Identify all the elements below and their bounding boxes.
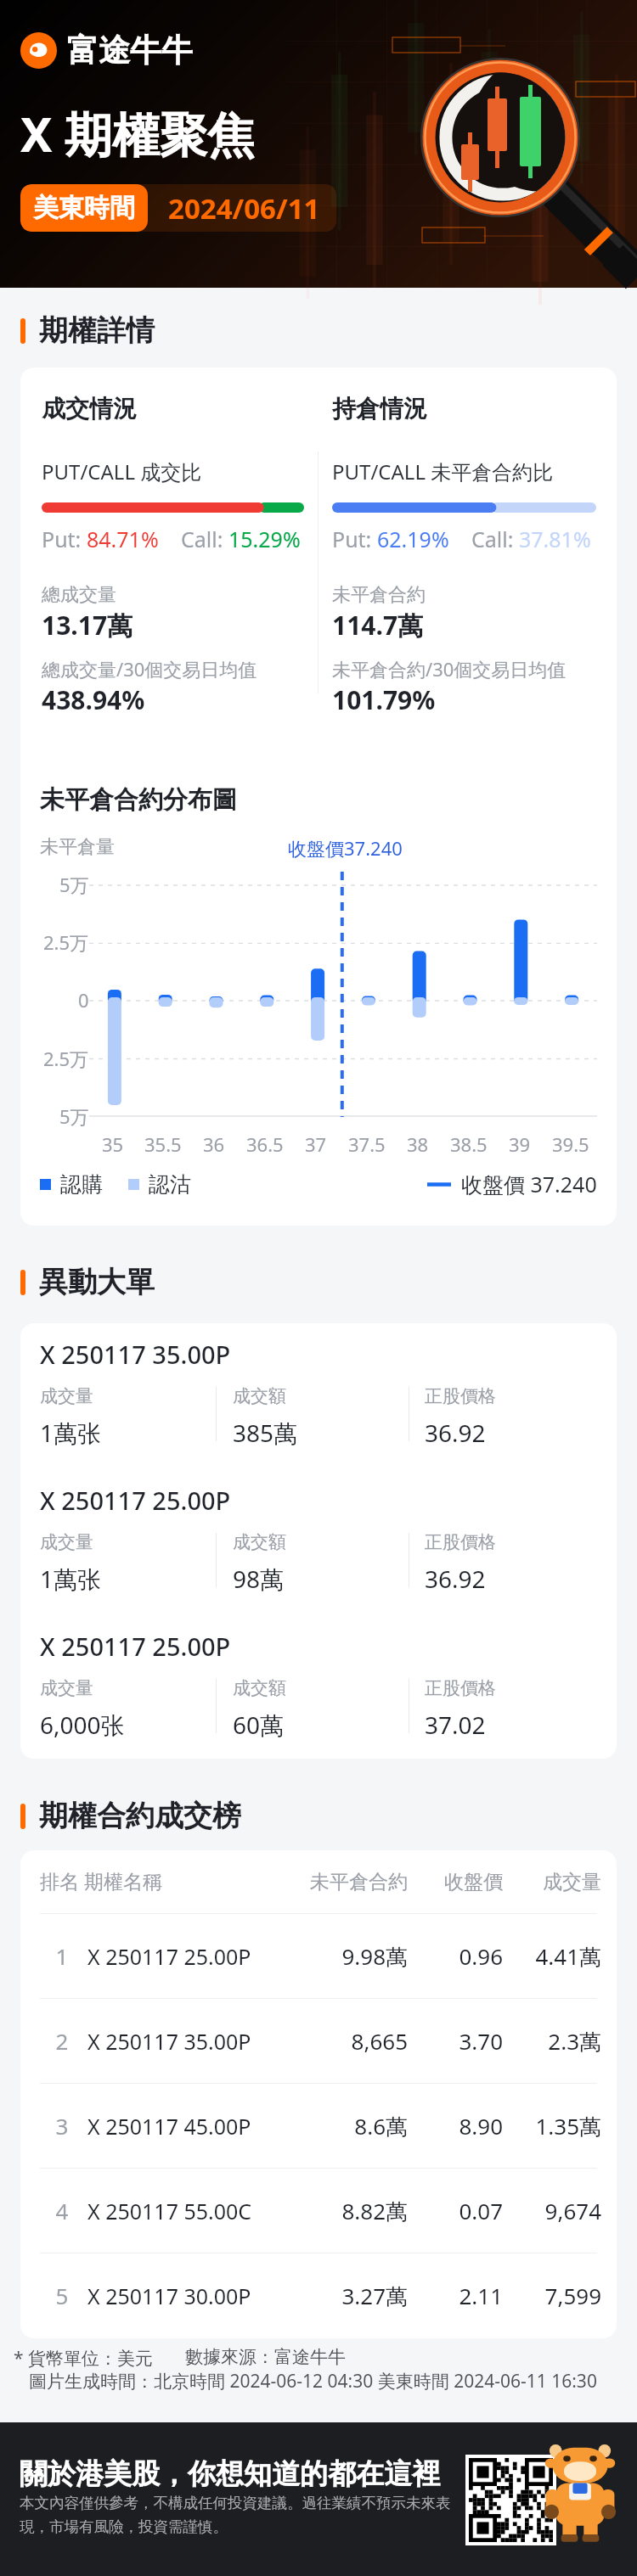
staticText: 62.19% [377, 525, 449, 553]
staticText: * 貨幣單位：美元 [14, 2346, 154, 2371]
staticText: 收盤價 [408, 1870, 503, 1894]
staticText: 36.92 [425, 1417, 486, 1449]
staticText: 1萬张 [40, 1563, 102, 1595]
staticText: PUT/CALL 未平倉合約比 [332, 457, 554, 485]
staticText: 8.90 [408, 2111, 503, 2141]
staticText: 2 [40, 2026, 84, 2056]
staticText: X 250117 35.00P [40, 1338, 231, 1371]
staticText: 認購 [60, 1171, 103, 1198]
staticText: 5万 [59, 872, 89, 897]
staticText: 4.41萬 [503, 1941, 601, 1972]
staticText: X 250117 35.00P [87, 2027, 297, 2056]
button[interactable]: 5 [20, 2253, 617, 2337]
staticText: 期權名稱 [84, 1870, 297, 1894]
staticText: Call: [471, 525, 519, 553]
button[interactable]: 1 [20, 1914, 617, 1998]
staticText: 35.5 [144, 1131, 182, 1157]
staticText: 1.35萬 [503, 2111, 601, 2141]
staticText: 39.5 [552, 1131, 589, 1157]
staticText: 本文內容僅供參考，不構成任何投資建議。過往業績不預示未來表 現，市場有風險，投資… [20, 2494, 451, 2536]
staticText: 期權合約成交榜 [39, 1798, 241, 1834]
staticText: 13.17萬 [42, 608, 133, 643]
staticText: Call: [181, 525, 228, 553]
staticText: 36.92 [425, 1563, 486, 1595]
staticText: 總成交量/30個交易日均值 [42, 656, 257, 682]
staticText: 60萬 [233, 1709, 285, 1741]
staticText: 8,665 [297, 2026, 408, 2056]
staticText: 15.29% [228, 525, 301, 553]
staticText: 2.11 [408, 2281, 503, 2310]
staticText: 成交量 [40, 1677, 93, 1699]
staticText: 1萬张 [40, 1417, 102, 1449]
staticText: 成交情況 [42, 394, 137, 424]
staticText: 37.81% [519, 525, 591, 553]
staticText: 2.5万 [43, 1046, 89, 1071]
staticText: X 期權聚焦 [20, 101, 256, 166]
staticText: 101.79% [332, 682, 436, 717]
staticText: 關於港美股，你想知道的都在這裡 [20, 2456, 440, 2492]
staticText: 正股價格 [425, 1531, 496, 1553]
staticText: 排名 [40, 1870, 84, 1894]
staticText: 收盤價 37.240 [461, 1170, 597, 1198]
staticText: X 250117 25.00P [40, 1630, 231, 1663]
staticText: 5万 [59, 1103, 89, 1129]
staticText: 8.82萬 [297, 2196, 408, 2226]
staticText: 37.5 [348, 1131, 386, 1157]
staticText: 數據來源：富途牛牛 [185, 2346, 346, 2368]
staticText: Put: [42, 525, 87, 553]
staticText: 未平倉合約/30個交易日均值 [332, 656, 567, 682]
staticText: 2.3萬 [503, 2026, 601, 2057]
staticText: 美東時間 [33, 192, 135, 224]
staticText: 成交額 [233, 1385, 286, 1407]
button[interactable]: X 250117 25.00P [20, 1630, 617, 1741]
staticText: 正股價格 [425, 1385, 496, 1407]
staticText: 認沽 [149, 1171, 191, 1198]
staticText: X 250117 45.00P [87, 2112, 297, 2141]
staticText: 6,000张 [40, 1709, 125, 1741]
staticText: 未平倉量 [40, 835, 115, 859]
staticText: 成交額 [233, 1531, 286, 1553]
staticText: 3.27萬 [297, 2281, 408, 2311]
staticText: 成交量 [40, 1531, 93, 1553]
staticText: 7,599 [503, 2281, 601, 2310]
staticText: 2024/06/11 [168, 189, 320, 227]
staticText: 37.02 [425, 1709, 486, 1741]
staticText: 5 [40, 2281, 84, 2310]
staticText: 36 [203, 1131, 225, 1157]
staticText: 1 [40, 1941, 84, 1971]
staticText: 成交量 [503, 1870, 601, 1894]
staticText: 0 [78, 987, 89, 1013]
staticText: 114.7萬 [332, 608, 424, 643]
staticText: 385萬 [233, 1417, 298, 1449]
staticText: 8.6萬 [297, 2111, 408, 2141]
staticText: 0.96 [408, 1941, 503, 1971]
staticText: 39 [509, 1131, 531, 1157]
staticText: 84.71% [87, 525, 159, 553]
staticText: 438.94% [42, 682, 145, 717]
staticText: 異動大單 [39, 1264, 155, 1300]
staticText: 圖片生成時間：北京時間 2024-06-12 04:30 美東時間 2024-0… [29, 2369, 597, 2394]
staticText: PUT/CALL 成交比 [42, 457, 202, 485]
staticText: 35 [102, 1131, 124, 1157]
button[interactable]: X 250117 35.00P [20, 1338, 617, 1449]
staticText: 38.5 [450, 1131, 488, 1157]
button[interactable]: X 250117 25.00P [20, 1484, 617, 1595]
staticText: X 250117 55.00C [87, 2197, 297, 2225]
button[interactable]: 4 [20, 2169, 617, 2253]
staticText: 富途牛牛 [67, 31, 193, 70]
button[interactable]: 3 [20, 2084, 617, 2168]
button[interactable]: 2 [20, 1999, 617, 2083]
staticText: 9.98萬 [297, 1941, 408, 1972]
staticText: 未平倉合約 [332, 583, 426, 607]
button[interactable]: 美東時間 [20, 184, 336, 232]
staticText: 未平倉合約 [297, 1870, 408, 1894]
staticText: 36.5 [246, 1131, 284, 1157]
staticText: 成交量 [40, 1385, 93, 1407]
staticText: 9,674 [503, 2196, 601, 2225]
staticText: X 250117 25.00P [40, 1484, 231, 1517]
staticText: 期權詳情 [39, 312, 155, 349]
staticText: 持倉情況 [332, 394, 427, 424]
staticText: 收盤價37.240 [288, 835, 403, 861]
staticText: 98萬 [233, 1563, 285, 1595]
staticText: 37 [305, 1131, 327, 1157]
